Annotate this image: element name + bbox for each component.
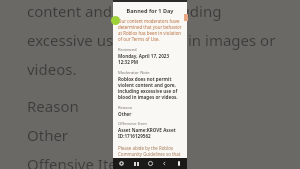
staticText: Banned for 1 Day bbox=[118, 7, 182, 14]
staticText: Monday, April 17, 2023 12:32 PM bbox=[118, 53, 182, 65]
staticText: Offensive Item bbox=[118, 121, 147, 127]
button[interactable]: Screenshot bbox=[115, 158, 127, 169]
staticText: Other bbox=[27, 125, 69, 145]
button[interactable]: Home bbox=[144, 158, 156, 169]
staticText: Asset Name:KROVE Asset ID:1716129562 bbox=[118, 127, 182, 139]
staticText: Offensive Item bbox=[27, 154, 131, 169]
staticText: Reviewed bbox=[118, 47, 137, 53]
staticText: Moderator Note bbox=[118, 70, 150, 76]
staticText: Other bbox=[118, 111, 132, 117]
staticText: Our content moderators have determined t… bbox=[118, 18, 182, 42]
staticText: Roblox does not permit violent content a… bbox=[118, 76, 182, 100]
staticText: videos. bbox=[27, 59, 77, 79]
staticText: Please abide by the Roblox Community Gui… bbox=[118, 145, 182, 158]
staticText: content and gore, including bbox=[27, 1, 222, 21]
staticText: Reason bbox=[118, 105, 133, 111]
button[interactable]: Notifications bbox=[173, 158, 185, 169]
button[interactable]: Recent apps bbox=[130, 158, 142, 169]
staticText: Reason bbox=[27, 96, 79, 116]
button[interactable]: Back bbox=[158, 158, 170, 169]
staticText: excessive use of blood in images or bbox=[27, 30, 276, 50]
